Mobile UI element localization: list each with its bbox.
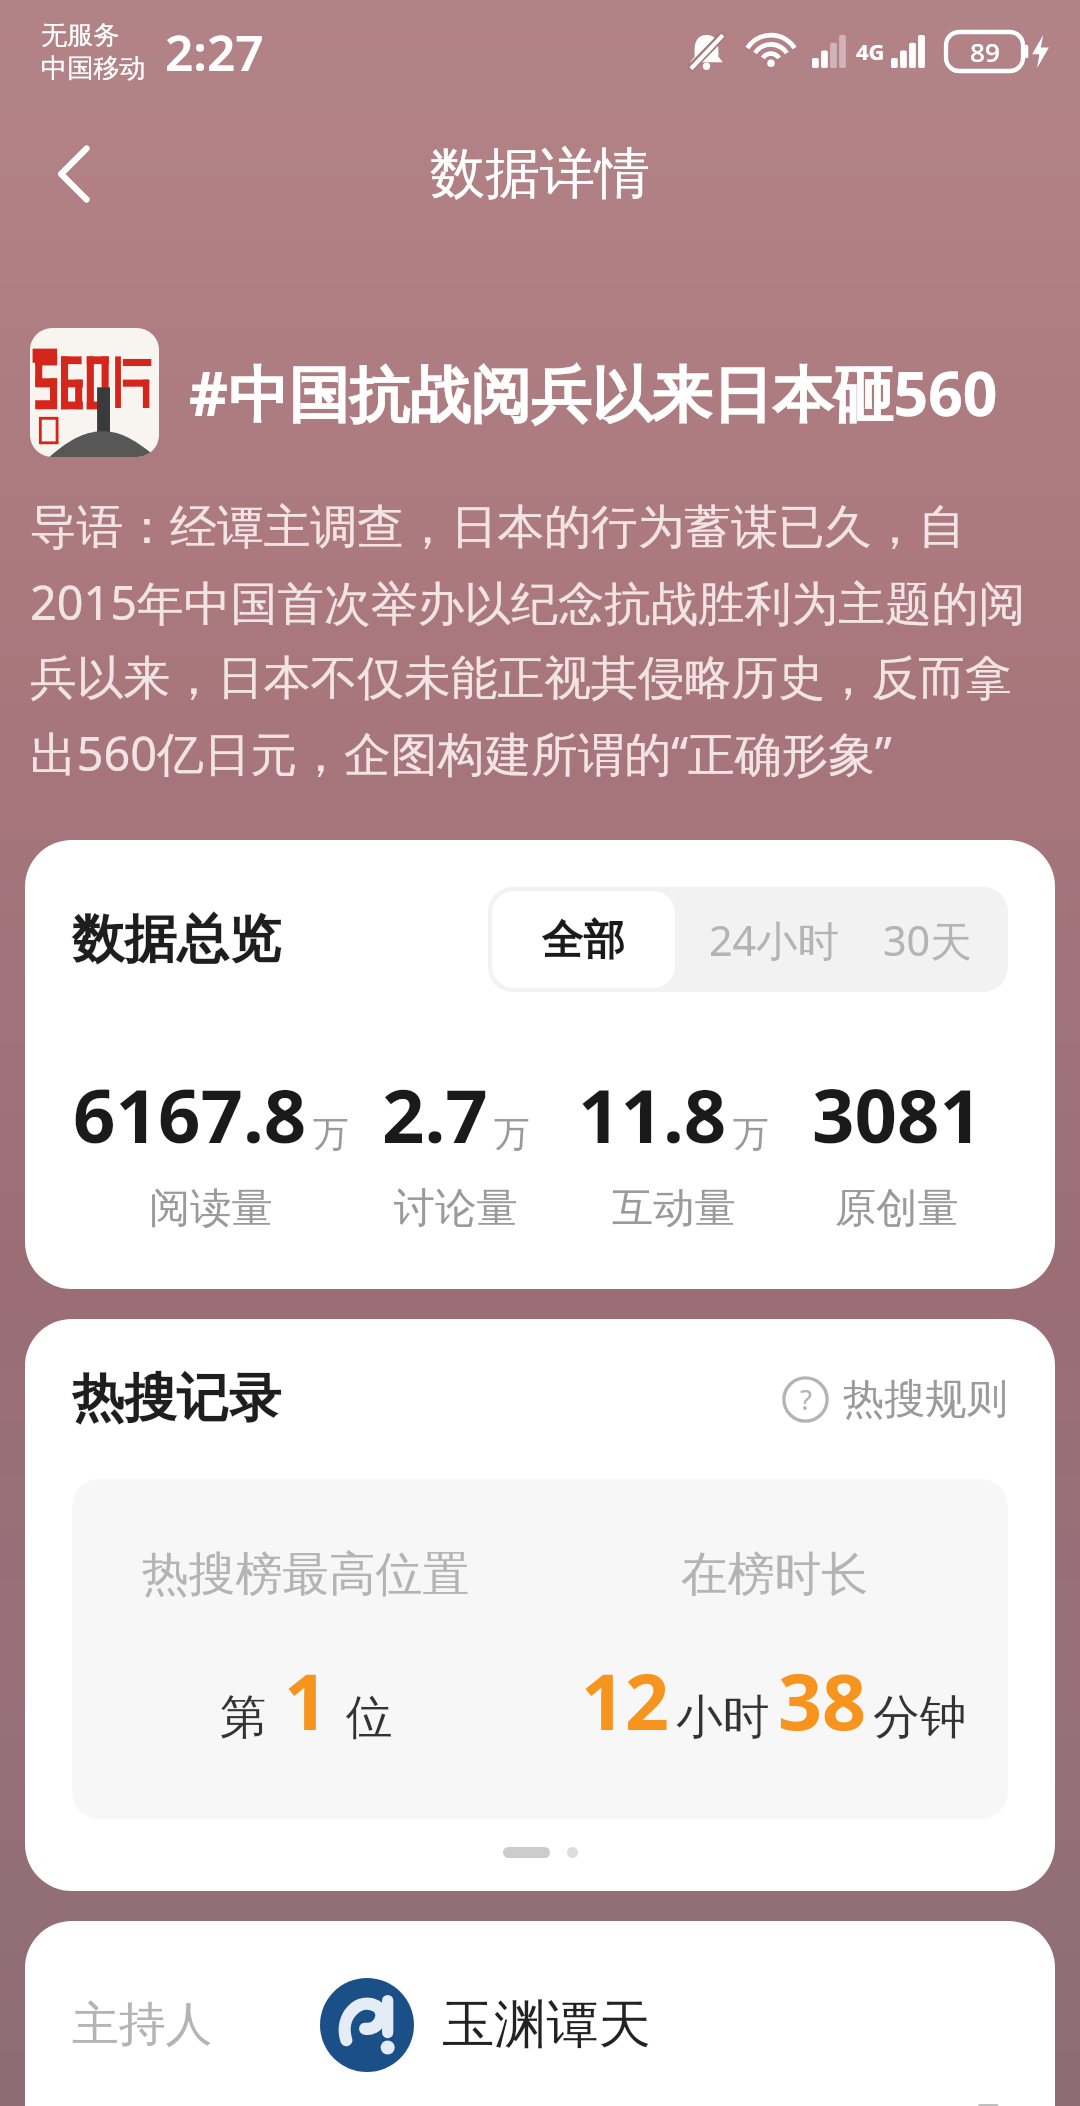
- staticText: 全部: [542, 914, 625, 966]
- button[interactable]: 30天: [869, 887, 1008, 992]
- staticText: 互动量: [612, 1182, 736, 1234]
- staticText: 万: [494, 1112, 530, 1157]
- staticText: 数据总览: [72, 907, 281, 973]
- staticText: 1: [284, 1648, 329, 1753]
- staticText: 数据详情: [430, 139, 650, 208]
- staticText: 主持人: [72, 1995, 320, 2054]
- staticText: 38: [778, 1648, 867, 1753]
- staticText: 万: [733, 1112, 769, 1157]
- staticText: 中国移动: [41, 52, 146, 85]
- staticText: ?: [800, 1381, 812, 1418]
- staticText: 4G: [856, 36, 885, 66]
- staticText: 24小时: [709, 912, 839, 968]
- staticText: 在榜时长: [681, 1545, 868, 1604]
- staticText: 热搜榜最高位置: [142, 1545, 470, 1604]
- staticText: 30天: [883, 912, 972, 968]
- staticText: 阅读量: [149, 1182, 273, 1234]
- staticText: 12: [581, 1648, 670, 1753]
- staticText: 原创量: [835, 1182, 959, 1234]
- staticText: 热搜规则: [843, 1373, 1008, 1425]
- staticText: 玉渊谭天: [442, 1992, 651, 2058]
- staticText: 6167.8: [73, 1064, 307, 1165]
- staticText: 讨论量: [394, 1182, 518, 1234]
- staticText: 无服务: [41, 19, 120, 52]
- staticText: 第: [220, 1688, 267, 1747]
- staticText: 导语：经谭主调查，日本的行为蓄谋已久，自2015年中国首次举办以纪念抗战胜利为主…: [30, 498, 1050, 785]
- staticText: 3081: [812, 1064, 982, 1165]
- staticText: 小时: [676, 1688, 770, 1747]
- button[interactable]: ?: [782, 1373, 1008, 1425]
- staticText: 89: [970, 34, 1000, 70]
- button[interactable]: 主持人: [72, 1943, 1008, 2106]
- staticText: 11.8: [578, 1064, 727, 1165]
- staticText: #中国抗战阅兵以来日本砸560亿…: [189, 351, 1050, 434]
- button[interactable]: 全部: [492, 891, 675, 988]
- button[interactable]: 返回: [11, 110, 138, 237]
- staticText: 位: [346, 1688, 393, 1747]
- staticText: 万: [313, 1112, 349, 1157]
- staticText: 2:27: [165, 18, 264, 85]
- staticText: 2.7: [382, 1064, 488, 1165]
- staticText: 分钟: [873, 1688, 967, 1747]
- button[interactable]: 24小时: [679, 887, 869, 992]
- staticText: 热搜记录: [72, 1366, 281, 1432]
